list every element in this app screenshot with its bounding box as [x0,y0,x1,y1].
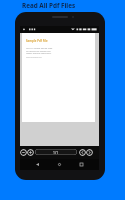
staticText: This is a simple pdf file used for testi… [26,47,53,54]
button[interactable]: Zoom in [27,149,34,156]
staticText: www.samplepdf.com [26,56,42,58]
button[interactable]: Recent apps [77,160,86,169]
button[interactable]: Home [55,160,64,169]
button[interactable]: Zoom out [20,149,27,156]
button[interactable]: Back [33,160,42,169]
staticText: 1/1 [53,150,59,155]
button[interactable]: Next page [86,149,93,156]
button[interactable]: Previous page [79,149,86,156]
staticText: Read All Pdf Files [22,1,76,10]
staticText: Sample Pdf File [26,39,48,43]
button[interactable]: 1/1 [35,149,77,155]
